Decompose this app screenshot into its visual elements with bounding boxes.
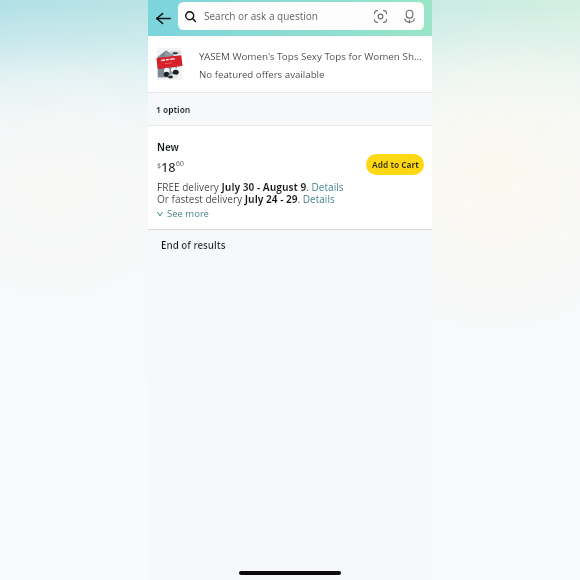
staticText: Search or ask a question <box>204 9 370 23</box>
button[interactable]: YASEM Women's Tops Sexy Tops for Women S… <box>148 36 432 92</box>
button[interactable]: Search or ask a question <box>178 2 424 30</box>
staticText: End of results <box>161 239 226 252</box>
staticText: No featured offers available <box>199 68 325 81</box>
button[interactable]: Search with camera <box>370 6 390 26</box>
button[interactable]: Add to Cart <box>366 154 424 175</box>
staticText: FREE delivery July 30 - August 9. Detail… <box>157 180 344 194</box>
button[interactable]: Back <box>148 0 178 36</box>
staticText: New <box>157 141 179 154</box>
staticText: See more <box>167 207 209 220</box>
staticText: YASEM Women's Tops Sexy Tops for Women S… <box>199 49 422 62</box>
staticText: $1860 <box>157 158 185 175</box>
staticText: 1 option <box>156 104 191 115</box>
staticText: Add to Cart <box>372 159 419 170</box>
button[interactable]: See more <box>157 207 209 220</box>
staticText: Or fastest delivery July 24 - 29. Detail… <box>157 192 335 206</box>
button[interactable]: Voice search <box>399 6 419 26</box>
